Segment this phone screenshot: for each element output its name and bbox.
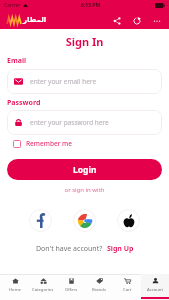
- staticText: Brands: [92, 287, 106, 293]
- staticText: or sign in with: [0, 186, 169, 194]
- button[interactable]: Sign in with Facebook: [29, 209, 52, 232]
- button[interactable]: enter your password here: [7, 110, 162, 135]
- button[interactable]: Cart: [113, 274, 141, 300]
- button[interactable]: More options: [150, 14, 163, 27]
- button[interactable]: Account: [141, 274, 169, 300]
- button[interactable]: Share: [110, 14, 123, 27]
- button[interactable]: Offers: [57, 274, 85, 300]
- staticText: المطار: [23, 16, 47, 24]
- button[interactable]: enter your email here: [7, 69, 162, 94]
- button[interactable]: Remember me: [13, 139, 72, 148]
- staticText: Password: [7, 98, 41, 108]
- button[interactable]: Login: [7, 159, 162, 180]
- staticText: Login: [73, 164, 97, 176]
- staticText: enter your password here: [30, 118, 109, 127]
- staticText: Email: [7, 56, 27, 66]
- button[interactable]: Home: [0, 274, 29, 300]
- staticText: Remember me: [26, 139, 72, 148]
- button[interactable]: Sign in with Apple: [117, 209, 140, 232]
- button[interactable]: Refresh: [130, 14, 143, 27]
- staticText: Account: [147, 287, 163, 293]
- staticText: Sign In: [0, 34, 169, 49]
- staticText: Offers: [65, 287, 78, 293]
- staticText: Carrier: [4, 2, 21, 9]
- button[interactable]: Categories: [29, 274, 57, 300]
- staticText: Cart: [123, 287, 132, 293]
- staticText: Home: [9, 287, 21, 293]
- button[interactable]: Sign in with Google: [73, 209, 96, 232]
- button[interactable]: Sign Up: [107, 244, 134, 254]
- button[interactable]: Brands: [85, 274, 113, 300]
- staticText: Sign Up: [107, 244, 134, 254]
- staticText: Categories: [32, 287, 54, 293]
- staticText: Don't have account?: [36, 244, 103, 254]
- staticText: enter your email here: [30, 77, 97, 86]
- staticText: 6:15 PM: [81, 2, 101, 9]
